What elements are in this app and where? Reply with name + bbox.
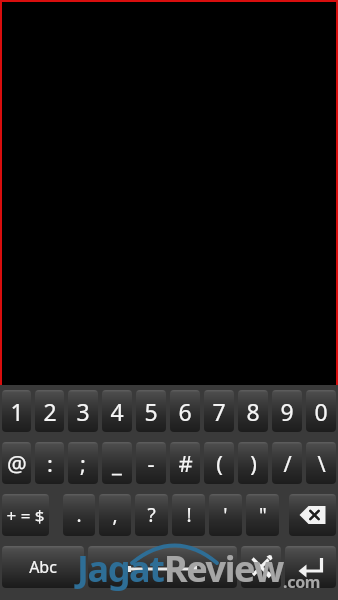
button[interactable]: 5 (136, 390, 166, 432)
staticText: ( (216, 448, 223, 478)
button[interactable]: Backspace (289, 494, 336, 536)
button[interactable]: Enter (285, 546, 336, 588)
button[interactable]: ( (204, 442, 234, 484)
staticText: / (283, 448, 292, 478)
staticText: , (112, 502, 118, 528)
button[interactable]: 8 (238, 390, 268, 432)
button[interactable]: 2 (35, 390, 64, 432)
staticText: - (147, 448, 155, 478)
staticText: : (47, 448, 53, 478)
staticText: 7 (212, 396, 226, 427)
button[interactable]: 3 (68, 390, 98, 432)
button[interactable]: 4 (102, 390, 132, 432)
staticText: Jagat (77, 544, 164, 593)
staticText: ? (147, 502, 156, 528)
button[interactable]: ? (135, 494, 168, 536)
button[interactable]: @ (2, 442, 31, 484)
staticText: # (178, 448, 193, 478)
button[interactable]: 1 (2, 390, 31, 432)
staticText: 4 (110, 396, 124, 427)
button[interactable]: 0 (306, 390, 336, 432)
staticText: ; (80, 448, 86, 478)
button[interactable]: \ (306, 442, 336, 484)
staticText: 2 (43, 396, 57, 427)
staticText: @ (7, 448, 27, 478)
button[interactable]: ) (238, 442, 268, 484)
button[interactable]: / (272, 442, 302, 484)
staticText: 3 (76, 396, 90, 427)
staticText: 5 (144, 396, 158, 427)
staticText: ! (186, 502, 192, 528)
button[interactable]: : (35, 442, 64, 484)
staticText: 8 (246, 396, 260, 427)
staticText: .com (283, 571, 321, 593)
staticText: Review (164, 544, 283, 593)
button[interactable]: 9 (272, 390, 302, 432)
button[interactable]: - (136, 442, 166, 484)
staticText: ' (223, 502, 228, 528)
button[interactable]: Abc (2, 546, 84, 588)
staticText: 6 (178, 396, 192, 427)
button[interactable]: Space (88, 546, 237, 588)
button[interactable]: . (63, 494, 95, 536)
button[interactable]: ! (172, 494, 205, 536)
staticText: \ (317, 448, 326, 478)
staticText: _ (112, 448, 122, 478)
button[interactable]: ; (68, 442, 98, 484)
staticText: + = $ (6, 504, 45, 527)
button[interactable]: ' (209, 494, 242, 536)
button[interactable]: " (246, 494, 279, 536)
button[interactable]: + = $ (2, 494, 49, 536)
button[interactable]: _ (102, 442, 132, 484)
staticText: ) (250, 448, 257, 478)
button[interactable]: , (99, 494, 131, 536)
staticText: . (76, 502, 82, 528)
button[interactable]: 6 (170, 390, 200, 432)
staticText: Abc (29, 556, 57, 578)
staticText: 9 (280, 396, 294, 427)
button[interactable]: 7 (204, 390, 234, 432)
staticText: 0 (314, 396, 328, 427)
button[interactable]: # (170, 442, 200, 484)
staticText: " (259, 502, 267, 528)
staticText: 1 (10, 396, 24, 427)
button[interactable]: Settings (241, 546, 281, 588)
